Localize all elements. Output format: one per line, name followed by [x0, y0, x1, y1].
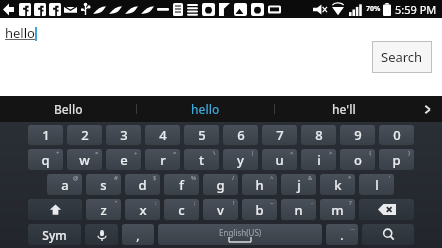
button[interactable]: .: [326, 224, 358, 245]
staticText: #: [114, 174, 118, 182]
button[interactable]: q: [28, 149, 63, 170]
staticText: 9: [354, 126, 362, 144]
button[interactable]: hello: [137, 96, 274, 122]
staticText: e: [120, 151, 128, 169]
button[interactable]: o: [340, 149, 375, 170]
staticText: !: [233, 199, 235, 207]
staticText: d: [138, 176, 147, 194]
staticText: ...: [350, 224, 355, 232]
button[interactable]: Space: [158, 224, 322, 245]
staticText: ×: [95, 149, 99, 157]
button[interactable]: t: [184, 149, 219, 170]
staticText: <: [290, 149, 294, 157]
button[interactable]: 6: [223, 125, 258, 145]
staticText: m: [331, 201, 344, 219]
button[interactable]: Sym: [28, 224, 81, 245]
button[interactable]: 2: [67, 125, 102, 145]
button[interactable]: Backspace: [359, 199, 414, 220]
button[interactable]: d: [125, 174, 160, 195]
staticText: hello: [5, 24, 35, 42]
button[interactable]: 9: [340, 125, 375, 145]
staticText: x: [139, 201, 147, 219]
staticText: z: [100, 201, 107, 219]
button[interactable]: w: [67, 149, 102, 170]
staticText: Bello: [54, 101, 83, 117]
staticText: b: [255, 201, 264, 219]
staticText: r: [160, 151, 166, 169]
staticText: f: [179, 176, 184, 194]
staticText: ': [389, 174, 391, 182]
staticText: >: [329, 149, 333, 157]
staticText: 5:59 PM: [395, 2, 437, 17]
button[interactable]: x: [125, 199, 160, 220]
button[interactable]: y: [223, 149, 258, 170]
button[interactable]: h: [242, 174, 277, 195]
button[interactable]: i: [301, 149, 336, 170]
staticText: s: [100, 176, 107, 194]
staticText: a: [61, 176, 69, 194]
staticText: @: [73, 174, 79, 182]
button[interactable]: Voice input: [85, 224, 118, 245]
button[interactable]: Shift: [28, 199, 82, 220]
staticText: v: [217, 201, 224, 219]
staticText: n: [294, 201, 303, 219]
button[interactable]: 5: [184, 125, 219, 145]
button[interactable]: Search: [362, 224, 414, 245]
staticText: t: [199, 151, 204, 169]
staticText: $: [153, 174, 157, 182]
staticText: 7: [276, 126, 284, 144]
button[interactable]: Bello: [0, 96, 136, 122]
button[interactable]: Search: [372, 41, 432, 73]
button[interactable]: l: [359, 174, 394, 195]
button[interactable]: 3: [106, 125, 141, 145]
button[interactable]: f: [164, 174, 199, 195]
staticText: 1: [42, 126, 50, 144]
staticText: he'll: [332, 101, 356, 117]
staticText: 4: [159, 126, 167, 144]
staticText: hello: [191, 101, 220, 117]
button[interactable]: n: [281, 199, 316, 220]
staticText: ^: [270, 174, 274, 182]
button[interactable]: 0: [379, 125, 414, 145]
button[interactable]: More suggestions: [412, 96, 442, 122]
staticText: i: [317, 151, 321, 169]
staticText: j: [297, 176, 301, 194]
button[interactable]: a: [47, 174, 82, 195]
button[interactable]: c: [164, 199, 199, 220]
button[interactable]: 1: [28, 125, 63, 145]
button[interactable]: 7: [262, 125, 297, 145]
staticText: 2: [81, 126, 89, 144]
button[interactable]: j: [281, 174, 316, 195]
button[interactable]: p: [379, 149, 414, 170]
staticText: l: [375, 176, 379, 194]
staticText: Search: [381, 48, 423, 66]
staticText: ": [115, 199, 118, 207]
button[interactable]: ,: [122, 224, 154, 245]
button[interactable]: u: [262, 149, 297, 170]
button[interactable]: s: [86, 174, 121, 195]
button[interactable]: z: [86, 199, 121, 220]
button[interactable]: g: [203, 174, 238, 195]
button[interactable]: r: [145, 149, 180, 170]
staticText: /: [232, 174, 235, 182]
staticText: Sym: [42, 227, 67, 243]
staticText: ,: [136, 227, 140, 243]
staticText: w: [79, 151, 90, 169]
staticText: 0: [393, 126, 401, 144]
button[interactable]: he'll: [275, 96, 412, 122]
button[interactable]: k: [320, 174, 355, 195]
button[interactable]: 8: [301, 125, 336, 145]
staticText: h: [255, 176, 264, 194]
button[interactable]: e: [106, 149, 141, 170]
button[interactable]: v: [203, 199, 238, 220]
button[interactable]: 4: [145, 125, 180, 145]
staticText: \: [213, 149, 216, 157]
staticText: ~: [270, 199, 274, 207]
staticText: %: [191, 174, 196, 182]
staticText: *: [348, 174, 352, 182]
button[interactable]: b: [242, 199, 277, 220]
staticText: 3: [120, 126, 128, 144]
button[interactable]: m: [320, 199, 355, 220]
staticText: :: [155, 199, 157, 207]
staticText: ÷: [134, 149, 138, 157]
